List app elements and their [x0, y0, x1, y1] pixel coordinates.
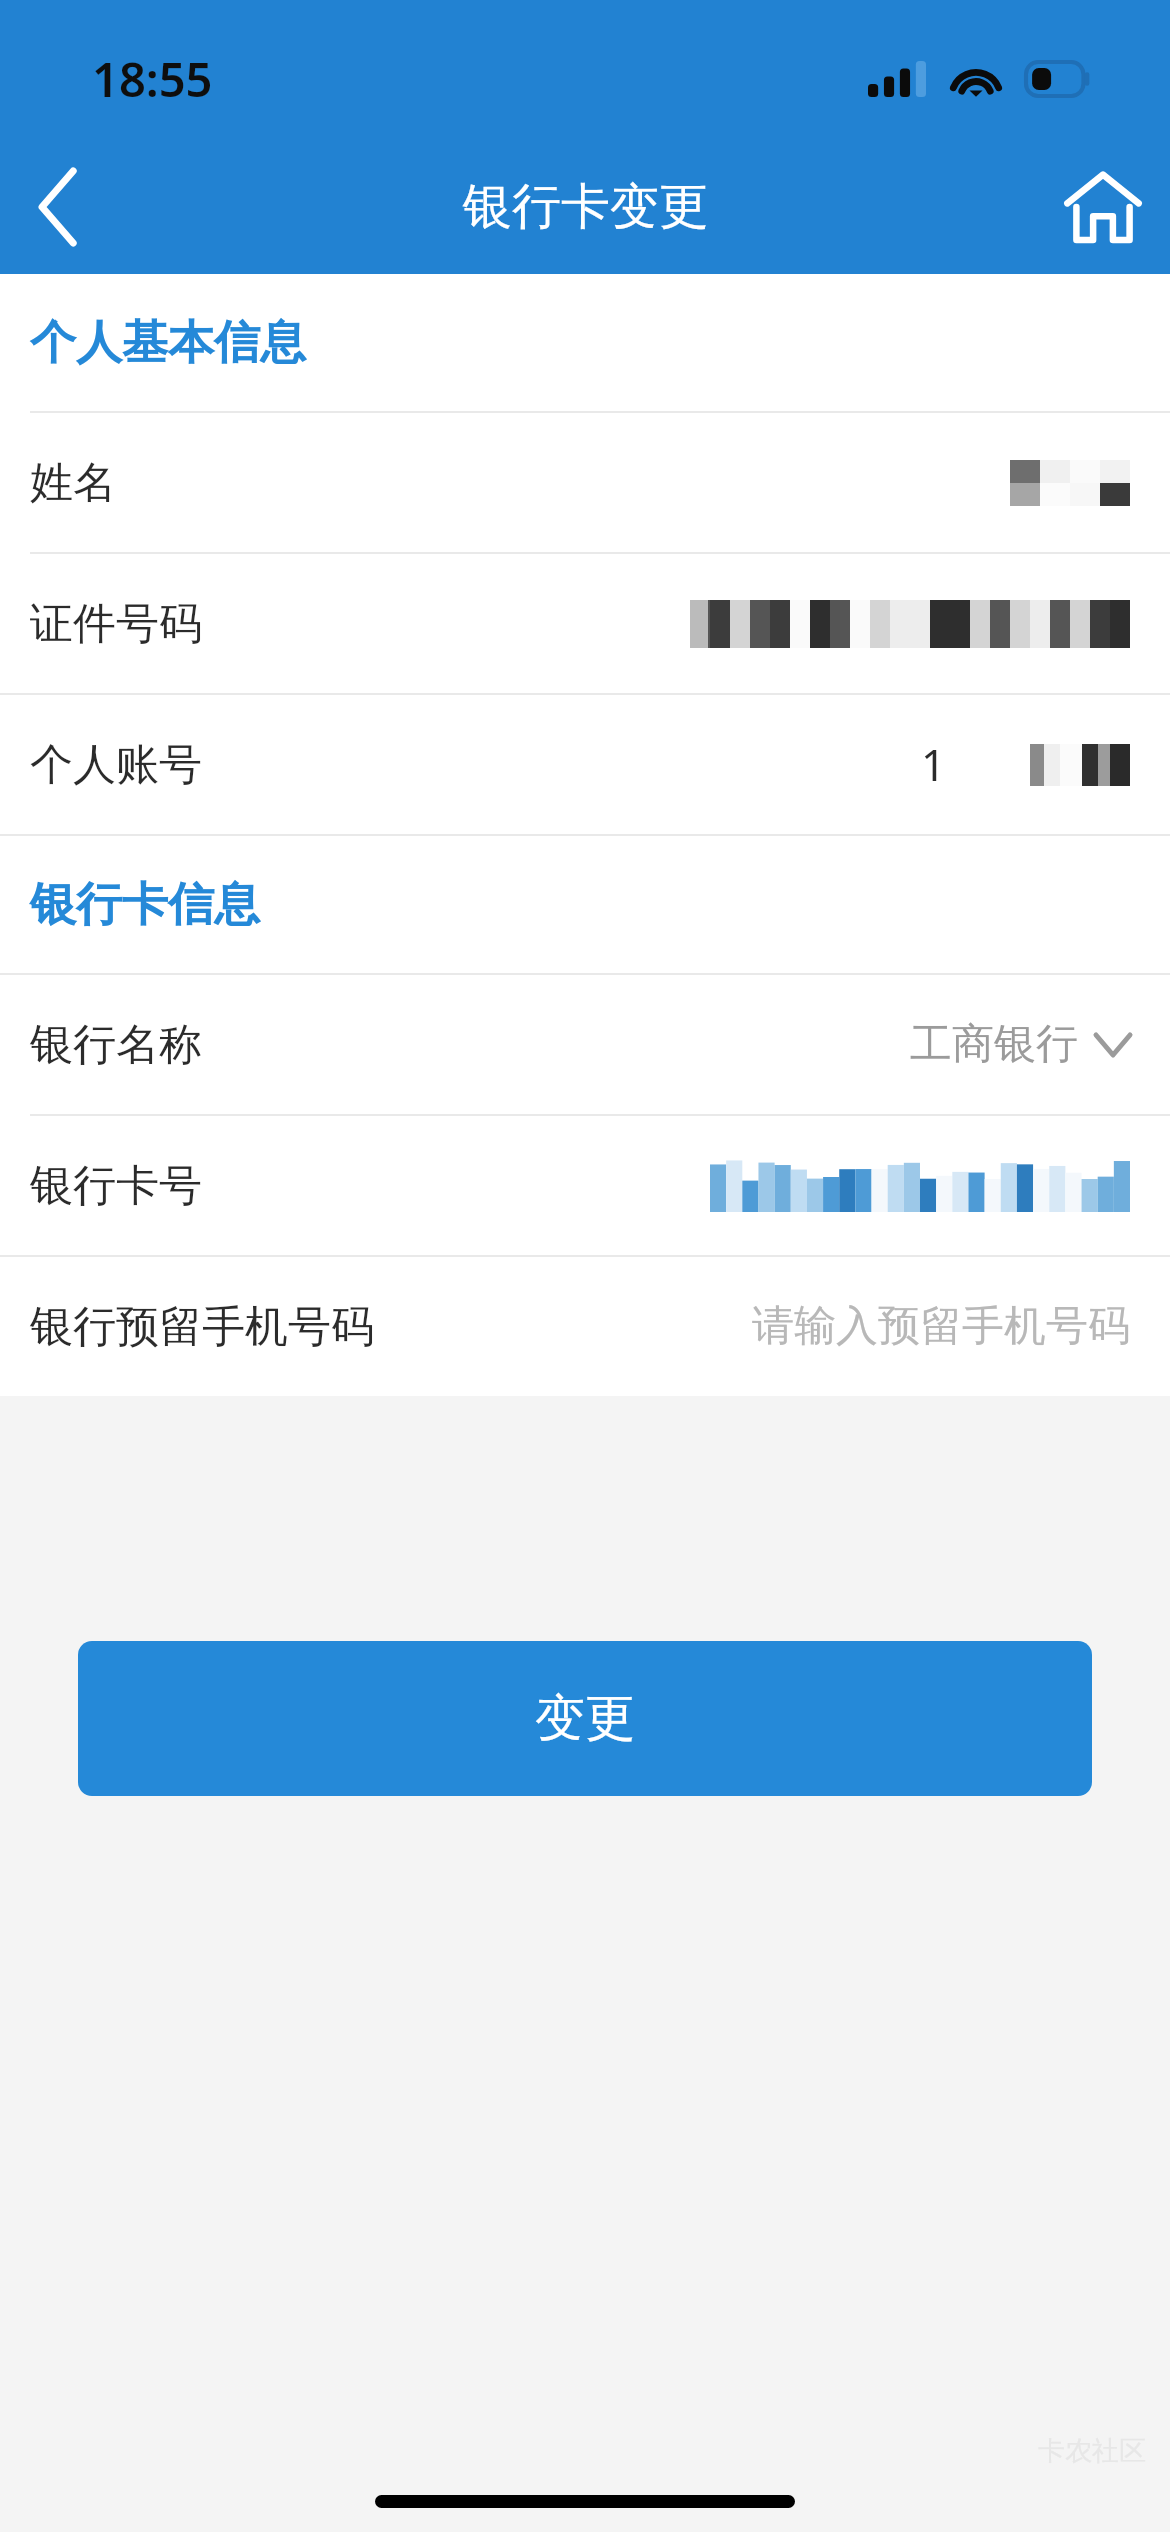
staticText: 个人基本信息 [30, 314, 306, 372]
button[interactable]: 银行名称 [0, 975, 1170, 1114]
staticText: 工商银行 [910, 1018, 1078, 1071]
button[interactable]: Back [0, 140, 115, 274]
staticText: 18:55 [92, 47, 213, 111]
staticText: 银行卡号 [30, 1159, 202, 1213]
staticText: 银行卡信息 [30, 876, 260, 934]
staticText: 请输入预留手机号码 [752, 1300, 1130, 1353]
staticText: 银行卡变更 [463, 176, 708, 238]
staticText: 1 [921, 735, 946, 794]
button[interactable]: 变更 [78, 1641, 1092, 1796]
staticText: 卡农社区 [1038, 2434, 1146, 2468]
staticText: 银行名称 [30, 1018, 202, 1072]
staticText: 银行预留手机号码 [30, 1300, 374, 1354]
staticText: 变更 [535, 1687, 635, 1750]
staticText: 证件号码 [30, 597, 202, 651]
staticText: 个人账号 [30, 738, 202, 792]
button[interactable]: Home [1035, 140, 1170, 274]
button[interactable]: 银行预留手机号码 [0, 1257, 1170, 1396]
staticText: 姓名 [30, 456, 116, 510]
